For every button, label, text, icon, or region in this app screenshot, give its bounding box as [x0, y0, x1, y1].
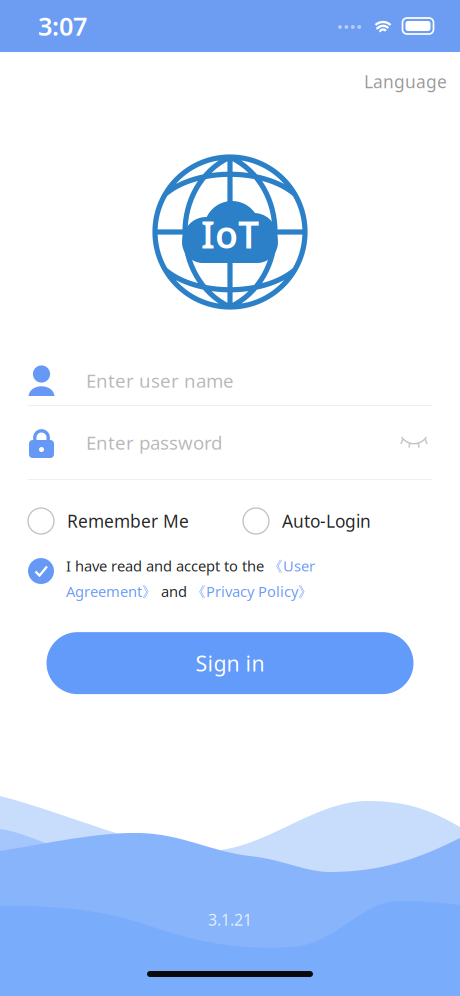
- staticText: Agreement》: [66, 582, 157, 601]
- staticText: Language: [364, 70, 447, 93]
- staticText: 3:07: [38, 9, 87, 43]
- button[interactable]: Sign in: [46, 632, 413, 694]
- button[interactable]: Show password: [396, 426, 432, 458]
- button[interactable]: Accept agreement: [28, 558, 54, 584]
- staticText: and: [157, 582, 191, 601]
- staticText: IoT: [201, 209, 259, 259]
- staticText: Sign in: [195, 649, 264, 677]
- button[interactable]: Remember Me: [28, 503, 189, 539]
- button[interactable]: Language: [351, 62, 460, 101]
- staticText: Enter user name: [86, 368, 234, 393]
- staticText: 《Privacy Policy》: [191, 582, 313, 601]
- staticText: I have read and accept to the: [66, 556, 264, 576]
- staticText: Auto-Login: [282, 509, 371, 532]
- staticText: Remember Me: [67, 509, 189, 532]
- button[interactable]: Auto-Login: [243, 503, 432, 539]
- staticText: 3.1.21: [208, 909, 252, 930]
- staticText: Enter password: [86, 430, 222, 455]
- staticText: 《User: [264, 556, 315, 576]
